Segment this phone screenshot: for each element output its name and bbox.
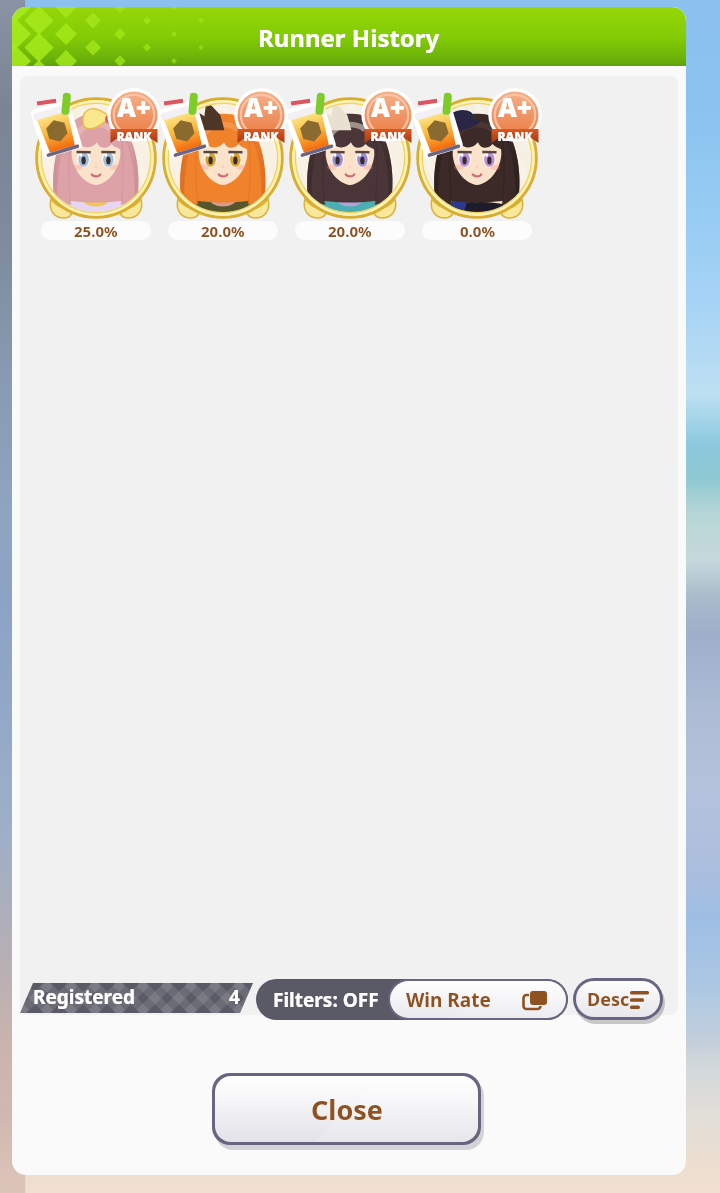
staticText: 4 <box>229 984 240 1010</box>
button[interactable]: Registered <box>20 983 253 1013</box>
staticText: 20.0% <box>201 221 245 240</box>
staticText: RANK <box>490 128 540 144</box>
button[interactable]: A+ <box>422 77 532 240</box>
staticText: 20.0% <box>328 221 372 240</box>
button[interactable]: Win Rate <box>388 979 568 1020</box>
staticText: Runner History <box>258 21 440 54</box>
button[interactable]: A+ <box>41 77 151 240</box>
button[interactable]: Desc <box>573 978 663 1020</box>
staticText: A+ <box>363 89 413 124</box>
button[interactable]: Filters: OFF <box>256 979 568 1020</box>
staticText: RANK <box>236 128 286 144</box>
button[interactable]: A+ <box>295 77 405 240</box>
staticText: Registered <box>33 984 136 1010</box>
staticText: A+ <box>236 89 286 124</box>
button[interactable]: Close <box>212 1073 481 1145</box>
staticText: Close <box>311 1091 383 1128</box>
staticText: Win Rate <box>406 987 491 1013</box>
staticText: A+ <box>109 89 159 124</box>
button[interactable]: A+ <box>168 77 278 240</box>
staticText: 25.0% <box>74 221 118 240</box>
staticText: Filters: OFF <box>273 987 379 1013</box>
staticText: A+ <box>490 89 540 124</box>
staticText: 0.0% <box>460 221 495 240</box>
other: Change sort key <box>523 990 548 1010</box>
staticText: RANK <box>363 128 413 144</box>
staticText: RANK <box>109 128 159 144</box>
staticText: Desc <box>587 987 630 1012</box>
